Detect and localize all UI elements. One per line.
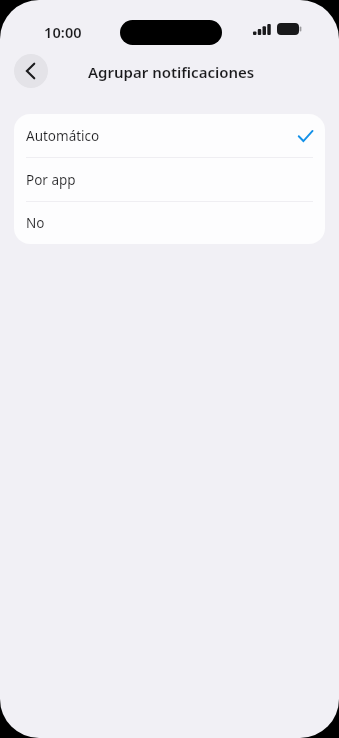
button[interactable]: Por app [14,158,325,201]
staticText: No [26,214,45,232]
button[interactable]: Atrás [14,54,48,88]
staticText: Por app [26,171,76,189]
button[interactable]: No [14,202,325,244]
staticText: 10:00 [44,22,82,42]
button[interactable]: Automático [14,114,325,157]
staticText: Agrupar notificaciones [88,62,255,82]
staticText: Automático [26,127,100,145]
